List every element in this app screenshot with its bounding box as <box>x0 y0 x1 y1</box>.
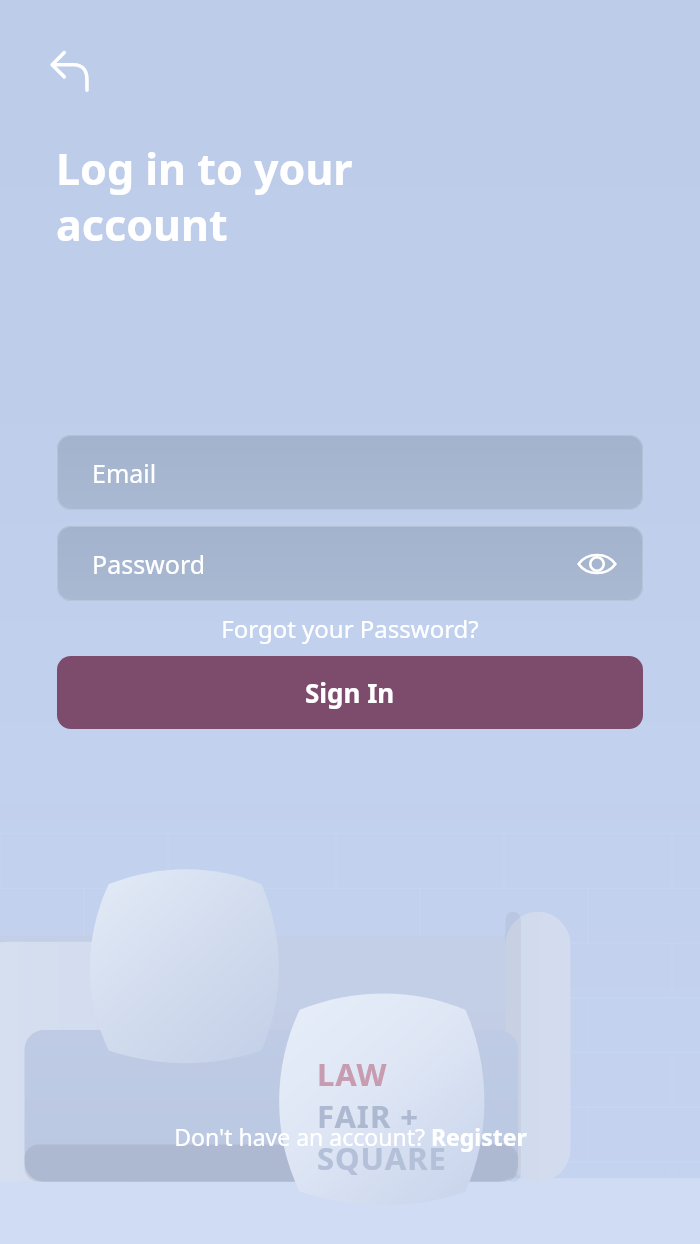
button[interactable]: Email <box>57 435 643 510</box>
staticText: Password <box>92 547 575 581</box>
button[interactable]: Show password <box>575 542 619 586</box>
staticText: Forgot your Password? <box>221 612 479 645</box>
staticText: SQUARE <box>317 1137 447 1179</box>
button[interactable]: Password <box>57 526 643 601</box>
staticText: LAW <box>317 1053 388 1095</box>
button[interactable]: Sign In <box>57 656 643 729</box>
staticText: Email <box>92 456 619 490</box>
button[interactable]: Forgot your Password? <box>57 612 643 645</box>
button[interactable]: Don't have an account? Register <box>174 1121 527 1152</box>
staticText: Log in to your account <box>56 139 353 254</box>
staticText: Sign In <box>305 675 395 710</box>
staticText: Don't have an account? Register <box>174 1121 527 1152</box>
staticText: FAIR + <box>317 1095 420 1137</box>
button[interactable]: Back <box>41 41 101 101</box>
